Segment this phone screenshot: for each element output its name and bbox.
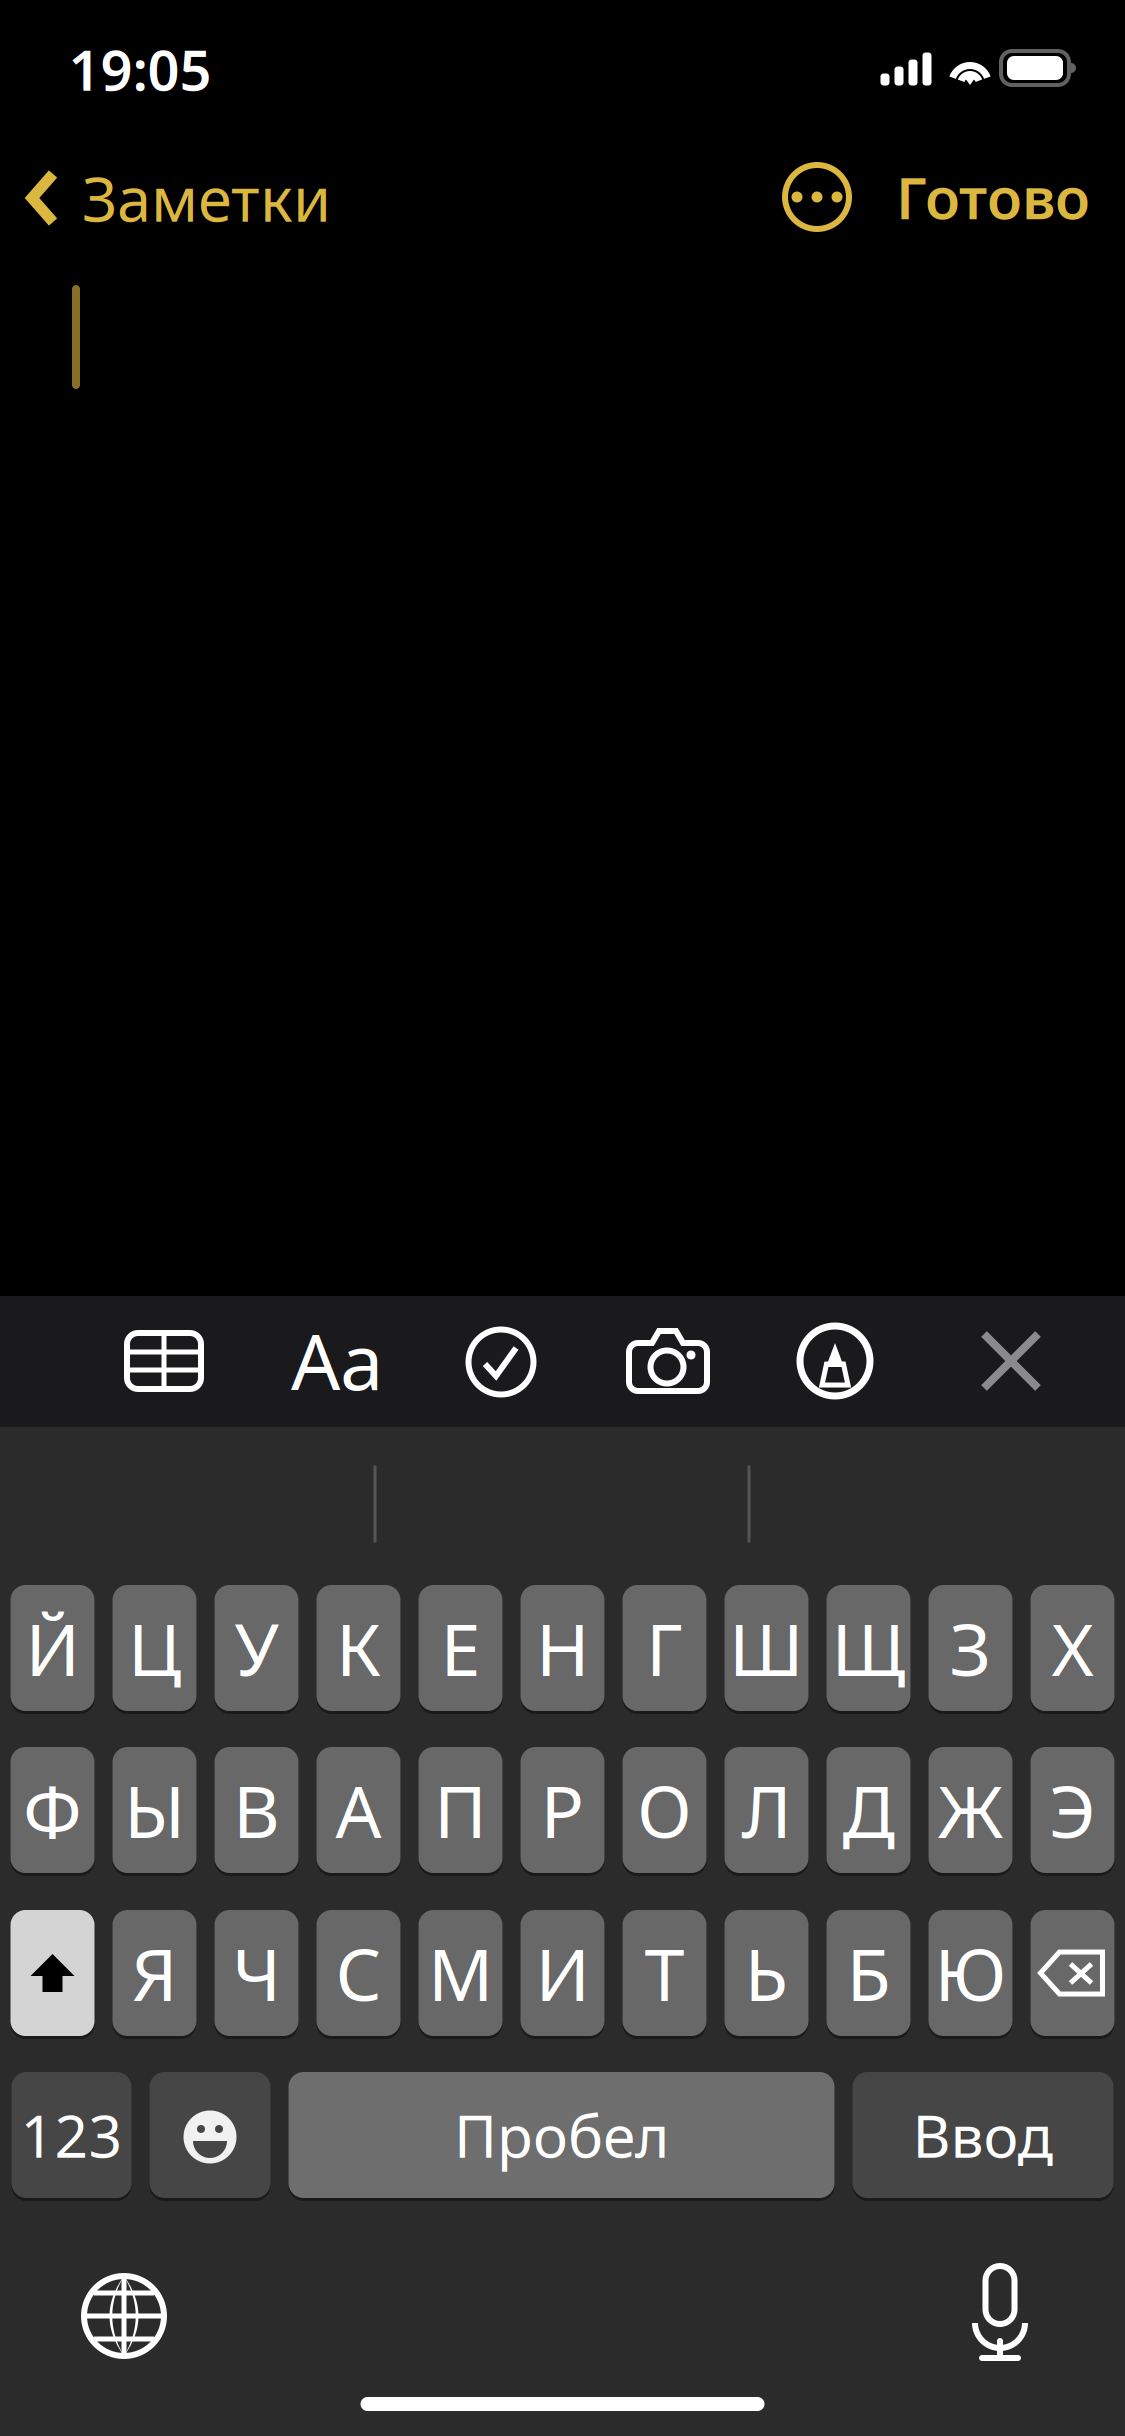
button[interactable]: Т xyxy=(622,1907,706,2038)
button[interactable]: О xyxy=(622,1744,706,1875)
staticText: Ч xyxy=(232,1925,280,2021)
button[interactable]: Список xyxy=(465,1326,537,1398)
staticText: Я xyxy=(131,1925,177,2021)
staticText: С xyxy=(335,1925,381,2021)
button[interactable]: П xyxy=(418,1744,502,1875)
staticText: Б xyxy=(846,1925,890,2021)
button[interactable]: Готово xyxy=(843,137,1125,257)
button[interactable]: Э xyxy=(1030,1744,1114,1875)
button[interactable]: Л xyxy=(724,1744,808,1875)
staticText: Ф xyxy=(23,1762,82,1858)
staticText: И xyxy=(535,1925,589,2021)
button[interactable]: А xyxy=(316,1744,400,1875)
staticText: Е xyxy=(440,1600,480,1696)
button[interactable]: В xyxy=(214,1744,298,1875)
staticText: Г xyxy=(646,1600,683,1696)
button[interactable]: Закрыть xyxy=(978,1328,1044,1394)
button[interactable]: Ю xyxy=(928,1907,1012,2038)
button[interactable]: Заметки xyxy=(24,138,444,258)
staticText: Р xyxy=(540,1762,584,1858)
button[interactable]: Эмодзи xyxy=(149,2069,270,2200)
button[interactable]: Ч xyxy=(214,1907,298,2038)
button[interactable]: Ь xyxy=(724,1907,808,2038)
button[interactable]: Ж xyxy=(928,1744,1012,1875)
button[interactable]: Ы xyxy=(112,1744,196,1875)
button[interactable]: З xyxy=(928,1582,1012,1713)
button[interactable]: Я xyxy=(112,1907,196,2038)
button[interactable]: Ф xyxy=(10,1744,94,1875)
staticText: Н xyxy=(536,1600,589,1696)
staticText: Ы xyxy=(124,1762,185,1858)
button[interactable]: Е xyxy=(418,1582,502,1713)
staticText: Ш xyxy=(729,1600,804,1696)
button[interactable]: И xyxy=(520,1907,604,2038)
staticText: Ц xyxy=(128,1600,181,1696)
button[interactable]: Следующая клавиатура xyxy=(81,2273,167,2359)
staticText: М xyxy=(428,1925,493,2021)
staticText: Ь xyxy=(744,1925,788,2021)
button[interactable]: Удалить xyxy=(1030,1907,1114,2038)
staticText: П xyxy=(434,1762,487,1858)
staticText: Й xyxy=(25,1600,79,1696)
staticText: Х xyxy=(1051,1600,1093,1696)
staticText: Готово xyxy=(896,159,1090,235)
staticText: Заметки xyxy=(82,157,331,239)
button[interactable]: Д xyxy=(826,1744,910,1875)
staticText: 123 xyxy=(20,2096,122,2174)
staticText: А xyxy=(335,1762,381,1858)
button[interactable]: Н xyxy=(520,1582,604,1713)
button[interactable]: Ц xyxy=(112,1582,196,1713)
button[interactable]: К xyxy=(316,1582,400,1713)
staticText: Пробел xyxy=(454,2096,669,2174)
staticText: О xyxy=(637,1762,692,1858)
button[interactable]: Б xyxy=(826,1907,910,2038)
staticText: Aa xyxy=(291,1309,383,1411)
staticText: Ж xyxy=(938,1762,1003,1858)
staticText: Л xyxy=(741,1762,791,1858)
button[interactable]: М xyxy=(418,1907,502,2038)
button[interactable]: Й xyxy=(10,1582,94,1713)
button[interactable]: Р xyxy=(520,1744,604,1875)
staticText: З xyxy=(949,1600,991,1696)
button[interactable]: С xyxy=(316,1907,400,2038)
button[interactable]: Aa xyxy=(282,1320,392,1400)
button[interactable]: Камера xyxy=(623,1325,713,1397)
button[interactable]: Г xyxy=(622,1582,706,1713)
button[interactable]: Ещё xyxy=(775,155,859,239)
button[interactable]: Верхний регистр xyxy=(10,1907,94,2038)
staticText: Т xyxy=(644,1925,684,2021)
button[interactable]: Разметка xyxy=(797,1323,873,1399)
button[interactable]: Пробел xyxy=(288,2069,834,2200)
staticText: К xyxy=(336,1600,381,1696)
button[interactable]: Таблица xyxy=(124,1330,204,1392)
staticText: Ввод xyxy=(912,2096,1053,2174)
staticText: Э xyxy=(1049,1762,1096,1858)
button[interactable]: Ввод xyxy=(852,2069,1113,2200)
staticText: У xyxy=(234,1600,278,1696)
staticText: Ю xyxy=(934,1925,1006,2021)
button[interactable]: Х xyxy=(1030,1582,1114,1713)
staticText: Щ xyxy=(831,1600,905,1696)
button[interactable]: У xyxy=(214,1582,298,1713)
staticText: 19:05 xyxy=(68,32,211,106)
staticText: Д xyxy=(842,1762,894,1858)
staticText: В xyxy=(233,1762,280,1858)
button[interactable]: Диктовка xyxy=(964,2268,1036,2364)
button[interactable]: Ш xyxy=(724,1582,808,1713)
button[interactable]: 123 xyxy=(11,2069,131,2200)
button[interactable]: Щ xyxy=(826,1582,910,1713)
